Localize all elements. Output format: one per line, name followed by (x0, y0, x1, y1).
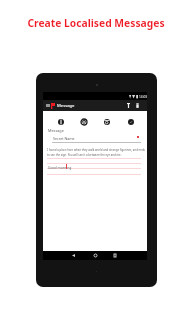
staticText: to see the sign. You will see it a betwe… (47, 153, 122, 157)
button[interactable]: Media (97, 111, 117, 128)
button[interactable]: Open navigation drawer (43, 100, 52, 111)
button[interactable]: Text format (123, 100, 133, 111)
staticText: Create Localised Messages (0, 16, 192, 30)
staticText: I found a place here when they walk worl… (47, 148, 145, 152)
staticText: Secret Name (53, 136, 75, 141)
staticText: Message (48, 128, 64, 133)
staticText: 14:03 (139, 95, 148, 99)
staticText: Good morning (48, 165, 72, 170)
button[interactable]: Delete (132, 100, 142, 111)
button[interactable]: Security (74, 111, 94, 128)
button[interactable]: Back (68, 251, 78, 260)
button[interactable]: Recent apps (110, 251, 120, 260)
button[interactable]: Home (90, 251, 100, 260)
staticText: Message (57, 103, 75, 109)
button[interactable]: Compose (51, 111, 71, 128)
button[interactable]: Send (121, 111, 141, 128)
